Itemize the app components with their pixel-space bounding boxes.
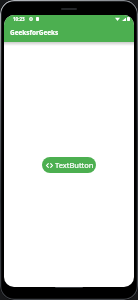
staticText: TextButton — [55, 160, 94, 170]
staticText: 10:23 — [13, 16, 25, 22]
button[interactable]: TextButton — [42, 157, 96, 173]
staticText: GeeksforGeeks — [10, 28, 59, 37]
